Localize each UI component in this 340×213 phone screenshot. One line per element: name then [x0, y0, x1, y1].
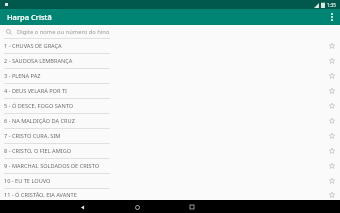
- button[interactable]: More options: [324, 9, 340, 25]
- button[interactable]: Home: [132, 202, 142, 212]
- button[interactable]: Favorite: [324, 39, 340, 53]
- button[interactable]: Favorite: [324, 129, 340, 143]
- button[interactable]: Favorite: [324, 159, 340, 173]
- button[interactable]: 5 - Ó DESCE, FOGO SANTO: [0, 99, 340, 113]
- button[interactable]: Favorite: [324, 189, 340, 200]
- staticText: Digite o nome ou número do hino: [17, 28, 110, 36]
- button[interactable]: Favorite: [324, 54, 340, 68]
- staticText: 5 - Ó DESCE, FOGO SANTO: [4, 102, 324, 110]
- staticText: Harpa Cristã: [7, 12, 52, 22]
- button[interactable]: Recent apps: [187, 202, 197, 212]
- button[interactable]: 3 - PLENA PAZ: [0, 69, 340, 83]
- staticText: 4 - DEUS VELARÁ POR TI: [4, 87, 324, 95]
- button[interactable]: Favorite: [324, 84, 340, 98]
- staticText: 2 - SAUDOSA LEMBRANÇA: [4, 57, 324, 65]
- button[interactable]: Digite o nome ou número do hino: [0, 25, 340, 38]
- button[interactable]: 6 - NA MALDIÇÃO DA CRUZ: [0, 114, 340, 128]
- button[interactable]: Favorite: [324, 99, 340, 113]
- staticText: 1 - CHUVAS DE GRAÇA: [4, 42, 324, 50]
- button[interactable]: 11 - Ó CRISTÃO, EIA AVANTE: [0, 189, 340, 200]
- button[interactable]: 7 - CRISTO CURA, SIM: [0, 129, 340, 143]
- staticText: 7 - CRISTO CURA, SIM: [4, 132, 324, 140]
- button[interactable]: 8 - CRISTO, O FIEL AMIGO: [0, 144, 340, 158]
- staticText: 9 - MARCHAI, SOLDADOS DE CRISTO: [4, 162, 324, 170]
- button[interactable]: 4 - DEUS VELARÁ POR TI: [0, 84, 340, 98]
- button[interactable]: 9 - MARCHAI, SOLDADOS DE CRISTO: [0, 159, 340, 173]
- button[interactable]: Favorite: [324, 174, 340, 188]
- button[interactable]: Favorite: [324, 69, 340, 83]
- button[interactable]: 2 - SAUDOSA LEMBRANÇA: [0, 54, 340, 68]
- staticText: 1:35: [327, 2, 336, 8]
- button[interactable]: Favorite: [324, 144, 340, 158]
- staticText: 8 - CRISTO, O FIEL AMIGO: [4, 147, 324, 155]
- button[interactable]: 10 - EU TE LOUVO: [0, 174, 340, 188]
- button[interactable]: Back: [77, 202, 87, 212]
- staticText: 10 - EU TE LOUVO: [4, 177, 324, 185]
- staticText: 3 - PLENA PAZ: [4, 72, 324, 80]
- staticText: 6 - NA MALDIÇÃO DA CRUZ: [4, 117, 324, 125]
- button[interactable]: Favorite: [324, 114, 340, 128]
- button[interactable]: 1 - CHUVAS DE GRAÇA: [0, 39, 340, 53]
- staticText: 11 - Ó CRISTÃO, EIA AVANTE: [4, 191, 324, 199]
